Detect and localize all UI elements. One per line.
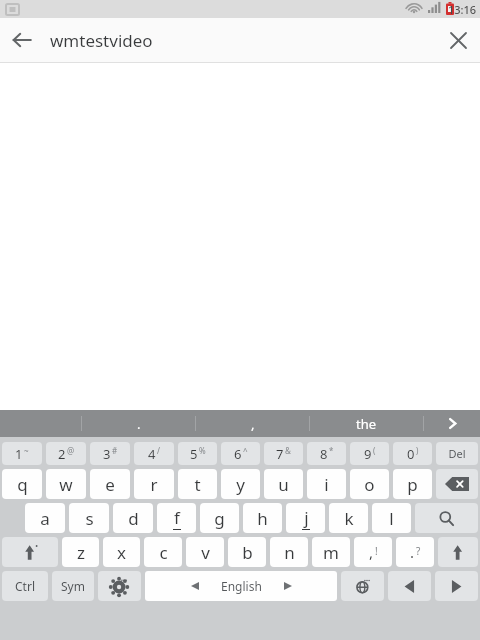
staticText: , <box>251 415 255 433</box>
staticText: % <box>199 445 206 456</box>
button[interactable]: the <box>310 410 423 437</box>
button[interactable]: s <box>69 503 109 533</box>
button[interactable]: Settings <box>98 571 141 601</box>
button[interactable]: Shift <box>2 537 58 567</box>
button[interactable]: e <box>90 469 130 499</box>
button[interactable]: 5 <box>178 442 217 465</box>
staticText: 1 <box>15 445 23 463</box>
staticText: English <box>221 578 262 594</box>
staticText: ! <box>375 544 378 558</box>
button[interactable]: i <box>307 469 346 499</box>
button[interactable]: . <box>82 410 195 437</box>
staticText: Ctrl <box>15 578 35 594</box>
button[interactable]: j <box>286 503 325 533</box>
staticText: Del <box>448 446 466 461</box>
button[interactable]: 6 <box>221 442 260 465</box>
staticText: d <box>128 507 139 530</box>
button[interactable]: v <box>186 537 224 567</box>
button[interactable]: Left <box>388 571 431 601</box>
button[interactable]: Backspace <box>436 469 478 499</box>
button[interactable]: w <box>46 469 86 499</box>
button[interactable]: q <box>2 469 42 499</box>
staticText: v <box>201 541 210 564</box>
button[interactable]: t <box>178 469 217 499</box>
staticText: u <box>278 473 289 496</box>
staticText: / <box>157 445 160 456</box>
staticText: 9 <box>364 445 372 463</box>
staticText: # <box>112 445 118 456</box>
button[interactable]: y <box>221 469 260 499</box>
staticText: k <box>344 507 354 530</box>
button[interactable]: n <box>270 537 308 567</box>
button[interactable]: b <box>228 537 266 567</box>
button[interactable]: f <box>157 503 196 533</box>
staticText: f <box>174 506 180 529</box>
staticText: 3 <box>103 445 111 463</box>
button[interactable]: Clear <box>436 18 480 62</box>
staticText: 6 <box>234 445 242 463</box>
staticText: l <box>389 507 394 530</box>
staticText: t <box>194 473 201 496</box>
button[interactable]: 4 <box>134 442 174 465</box>
staticText: , <box>369 542 374 562</box>
button[interactable]: Del <box>436 442 478 465</box>
button[interactable]: 8 <box>307 442 346 465</box>
staticText: wmtestvideo <box>50 29 436 52</box>
staticText: . <box>137 415 141 433</box>
button[interactable]: r <box>134 469 174 499</box>
staticText: 5 <box>190 445 198 463</box>
staticText: 4 <box>148 445 156 463</box>
button[interactable]: 2 <box>46 442 86 465</box>
button[interactable]: k <box>329 503 368 533</box>
button[interactable]: English <box>145 571 337 601</box>
staticText: n <box>284 541 295 564</box>
staticText: x <box>117 541 126 564</box>
staticText: ? <box>416 544 421 558</box>
button[interactable]: g <box>200 503 239 533</box>
staticText: ~ <box>24 445 29 456</box>
button[interactable]: u <box>264 469 303 499</box>
button[interactable]: z <box>62 537 99 567</box>
button[interactable]: 0 <box>393 442 432 465</box>
button[interactable]: 7 <box>264 442 303 465</box>
staticText: m <box>323 541 339 564</box>
button[interactable]: Ctrl <box>2 571 48 601</box>
button[interactable]: x <box>103 537 140 567</box>
staticText: o <box>364 473 375 496</box>
staticText: g <box>214 507 225 530</box>
staticText: the <box>356 415 377 433</box>
button[interactable]: m <box>312 537 350 567</box>
button[interactable]: Shift <box>438 537 478 567</box>
button[interactable]: Sym <box>52 571 94 601</box>
staticText: p <box>407 473 418 496</box>
staticText: b <box>242 541 253 564</box>
button[interactable]: d <box>113 503 153 533</box>
button[interactable]: o <box>350 469 389 499</box>
button[interactable]: 1 <box>2 442 42 465</box>
button[interactable]: h <box>243 503 282 533</box>
button[interactable]: Search <box>415 503 478 533</box>
button[interactable]: Back <box>0 18 44 62</box>
staticText: ^ <box>243 445 248 456</box>
button[interactable]: More suggestions <box>424 410 480 437</box>
staticText: a <box>40 507 50 530</box>
staticText: 7 <box>276 445 284 463</box>
button[interactable]: , <box>196 410 309 437</box>
staticText: ( <box>373 445 376 456</box>
button[interactable]: Change language <box>341 571 384 601</box>
button[interactable]: c <box>144 537 182 567</box>
button[interactable]: 9 <box>350 442 389 465</box>
button[interactable]: , <box>354 537 392 567</box>
staticText: ) <box>416 445 419 456</box>
staticText: j <box>304 506 309 529</box>
button[interactable]: p <box>393 469 432 499</box>
button[interactable]: . <box>396 537 434 567</box>
staticText: q <box>17 473 28 496</box>
button[interactable]: a <box>25 503 65 533</box>
staticText: & <box>285 445 291 456</box>
button[interactable]: 3 <box>90 442 130 465</box>
button[interactable]: Right <box>435 571 478 601</box>
button[interactable]: l <box>372 503 411 533</box>
staticText: 0 <box>407 445 415 463</box>
